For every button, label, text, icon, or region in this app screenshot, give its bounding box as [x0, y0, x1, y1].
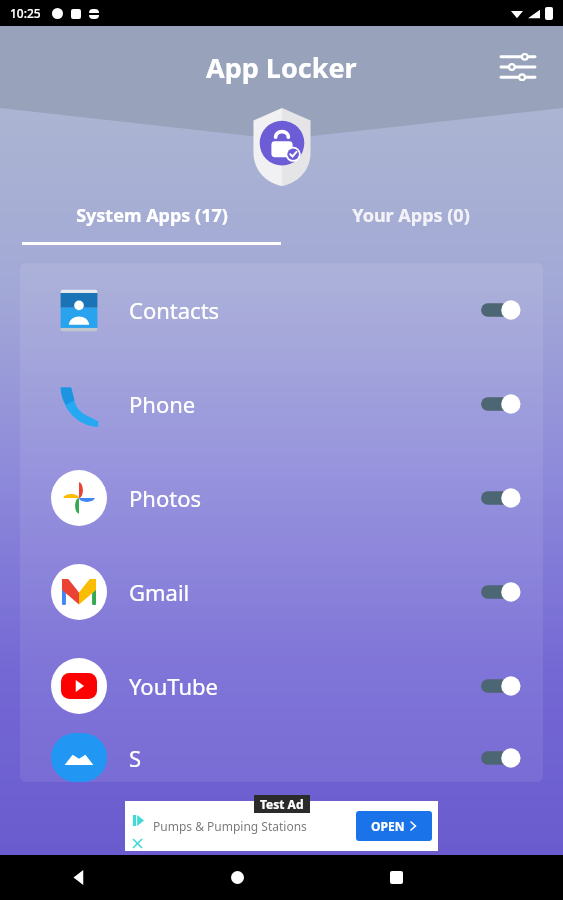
button[interactable]: Recents: [317, 855, 476, 900]
button[interactable]: Photos: [20, 451, 543, 545]
button[interactable]: OPEN: [356, 811, 432, 841]
button[interactable]: S: [20, 733, 543, 782]
button[interactable]: Your Apps (0): [281, 193, 541, 255]
button[interactable]: Lock YouTube: [481, 675, 521, 697]
button[interactable]: Contacts: [20, 263, 543, 357]
button[interactable]: YouTube: [20, 639, 543, 733]
staticText: S: [129, 743, 142, 773]
button[interactable]: Lock S: [481, 747, 521, 769]
staticText: YouTube: [129, 671, 218, 701]
staticText: Phone: [129, 389, 196, 419]
button[interactable]: Lock Photos: [481, 487, 521, 509]
button[interactable]: Home: [158, 855, 317, 900]
button[interactable]: Back: [0, 855, 158, 900]
staticText: Photos: [129, 483, 202, 513]
staticText: Gmail: [129, 577, 190, 607]
staticText: 10:25: [10, 5, 41, 21]
button[interactable]: Lock Gmail: [481, 581, 521, 603]
staticText: Your Apps (0): [352, 203, 470, 228]
staticText: Contacts: [129, 295, 220, 325]
button[interactable]: Gmail: [20, 545, 543, 639]
button[interactable]: Settings: [495, 44, 541, 90]
staticText: System Apps (17): [76, 203, 228, 228]
staticText: Pumps & Pumping Stations: [153, 818, 307, 834]
button[interactable]: Pumps & Pumping Stations: [125, 801, 438, 851]
button[interactable]: Lock Phone: [481, 393, 521, 415]
staticText: OPEN: [371, 818, 405, 834]
button[interactable]: Lock Contacts: [481, 299, 521, 321]
button[interactable]: Phone: [20, 357, 543, 451]
staticText: Test Ad: [260, 796, 304, 812]
button[interactable]: System Apps (17): [22, 193, 281, 255]
staticText: App Locker: [206, 49, 357, 86]
